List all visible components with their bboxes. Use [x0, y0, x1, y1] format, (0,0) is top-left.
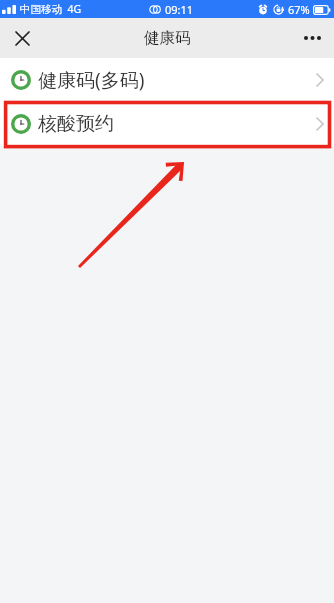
staticText: 67% — [288, 2, 310, 17]
button[interactable]: 健康码(多码) — [0, 58, 334, 102]
button[interactable]: 核酸预约 — [0, 102, 334, 146]
button[interactable]: More options — [296, 22, 328, 54]
staticText: 中国移动 4G — [20, 2, 82, 16]
staticText: 健康码 — [144, 28, 191, 48]
button[interactable]: Close — [6, 22, 38, 54]
staticText: 健康码(多码) — [38, 67, 145, 93]
staticText: 核酸预约 — [38, 112, 114, 136]
staticText: 09:11 — [165, 2, 194, 17]
